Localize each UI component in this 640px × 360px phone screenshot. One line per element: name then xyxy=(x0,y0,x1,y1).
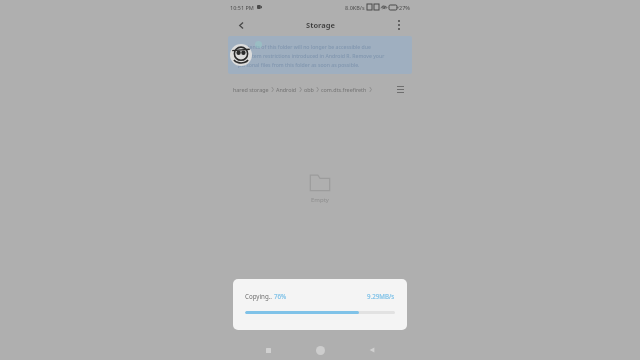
button[interactable]: List options xyxy=(393,82,407,96)
staticText: 9.29MB/s xyxy=(367,292,395,300)
staticText: 27% xyxy=(399,4,410,11)
button[interactable]: Contents of this folder will no longer b… xyxy=(228,36,412,74)
button[interactable]: Copying.. xyxy=(233,279,407,330)
button[interactable]: hared storage xyxy=(233,86,269,93)
button[interactable]: com.dts.freefireth xyxy=(321,86,367,93)
staticText: obb xyxy=(304,86,314,93)
staticText: 10:51 PM xyxy=(230,4,254,11)
staticText: Empty xyxy=(311,196,329,204)
button[interactable]: Home xyxy=(311,341,329,359)
staticText: Copying.. xyxy=(245,292,274,300)
button[interactable]: Back xyxy=(233,17,249,33)
staticText: Storage xyxy=(306,20,335,30)
button[interactable]: Android xyxy=(276,86,297,93)
staticText: Android xyxy=(276,86,297,93)
staticText: Contents of this folder will no longer b… xyxy=(238,43,371,50)
button[interactable]: Recents xyxy=(259,341,277,359)
staticText: 8.0KB/s xyxy=(345,4,365,11)
staticText: 76% xyxy=(274,292,287,300)
button[interactable]: obb xyxy=(304,86,314,93)
button[interactable]: Back xyxy=(363,341,381,359)
staticText: hared storage xyxy=(233,86,269,93)
button[interactable]: More options xyxy=(391,17,407,33)
staticText: personal files from this folder as soon … xyxy=(238,61,360,68)
staticText: to system restrictions introduced in And… xyxy=(238,52,385,59)
staticText: com.dts.freefireth xyxy=(321,86,367,93)
